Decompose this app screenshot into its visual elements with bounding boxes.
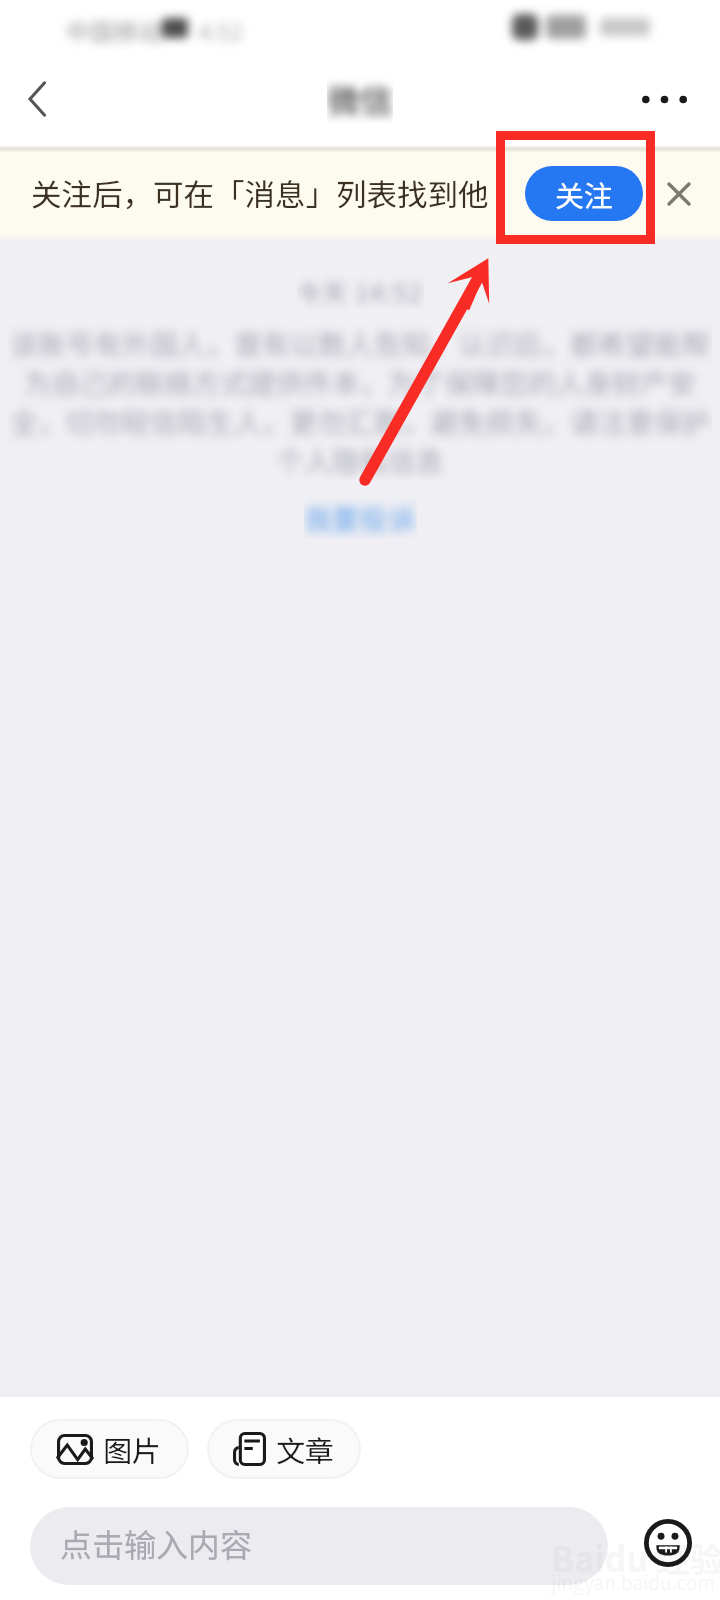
staticText: 该账号有外国人，曾有以数人告知，认识后，都希望能帮为自己的联络方式提供件本，为了… xyxy=(8,323,712,480)
staticText: jingyan.baidu.com xyxy=(551,1568,715,1596)
staticText: Baidu 经验 xyxy=(551,1533,720,1582)
button[interactable]: Back xyxy=(4,66,70,132)
staticText: 微信 xyxy=(327,75,393,123)
button[interactable]: 点击输入内容 xyxy=(30,1507,608,1585)
button[interactable]: 文章 xyxy=(207,1419,361,1479)
staticText: 图片 xyxy=(103,1428,162,1470)
staticText: 文章 xyxy=(276,1428,335,1470)
button[interactable]: Emoji xyxy=(637,1512,699,1574)
button[interactable]: 图片 xyxy=(30,1419,189,1479)
button[interactable]: More options xyxy=(628,70,700,128)
staticText: 中国移动 xyxy=(66,13,162,48)
staticText: 4:52 xyxy=(198,14,243,47)
staticText: 今天 14:52 xyxy=(297,274,424,309)
staticText: 点击输入内容 xyxy=(60,1520,253,1566)
staticText: 我要投诉 xyxy=(304,498,417,539)
staticText: 关注 xyxy=(555,173,614,215)
button[interactable]: 关注 xyxy=(525,166,643,221)
staticText: 关注后，可在「消息」列表找到他 xyxy=(31,171,489,215)
button[interactable]: Close xyxy=(655,170,703,218)
